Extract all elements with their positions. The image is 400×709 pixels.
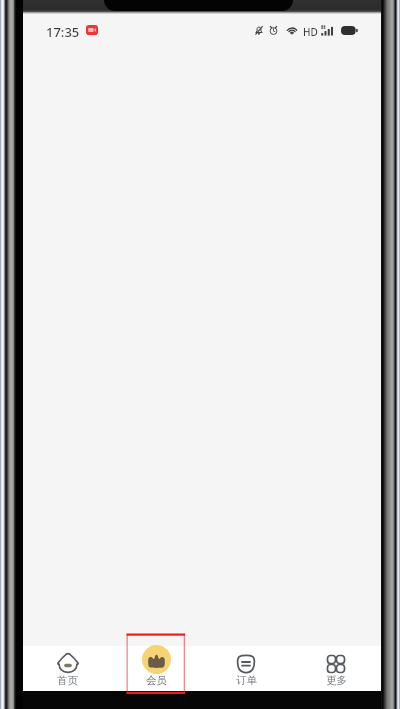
staticText: HD (303, 25, 318, 39)
button[interactable]: 首页 (23, 646, 112, 691)
button[interactable]: 更多 (291, 646, 381, 691)
staticText: 更多 (326, 674, 347, 687)
button[interactable]: 会员 (112, 646, 201, 691)
staticText: 17:35 (46, 23, 80, 41)
staticText: 首页 (57, 674, 78, 687)
staticText: 订单 (236, 674, 257, 687)
staticText: 会员 (146, 674, 167, 687)
button[interactable]: 订单 (201, 646, 291, 691)
